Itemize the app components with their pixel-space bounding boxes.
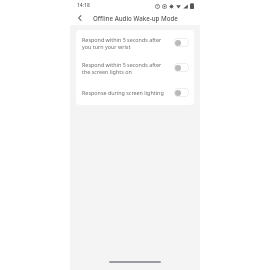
button[interactable]: Toggle bbox=[174, 38, 189, 47]
staticText: Response during screen lighting bbox=[82, 89, 169, 96]
button[interactable]: Response during screen lighting bbox=[76, 80, 194, 105]
staticText: 14:18 bbox=[77, 2, 90, 9]
staticText: Respond within 5 seconds after you turn … bbox=[82, 36, 169, 50]
button[interactable]: Respond within 5 seconds after the scree… bbox=[76, 55, 194, 80]
staticText: Respond within 5 seconds after the scree… bbox=[82, 61, 169, 75]
button[interactable]: Toggle bbox=[174, 63, 189, 72]
staticText: Offline Audio Wake-up Mode bbox=[93, 14, 178, 22]
button[interactable]: Toggle bbox=[174, 88, 189, 97]
button[interactable]: Respond within 5 seconds after you turn … bbox=[76, 30, 194, 55]
button[interactable]: Back bbox=[74, 12, 86, 24]
